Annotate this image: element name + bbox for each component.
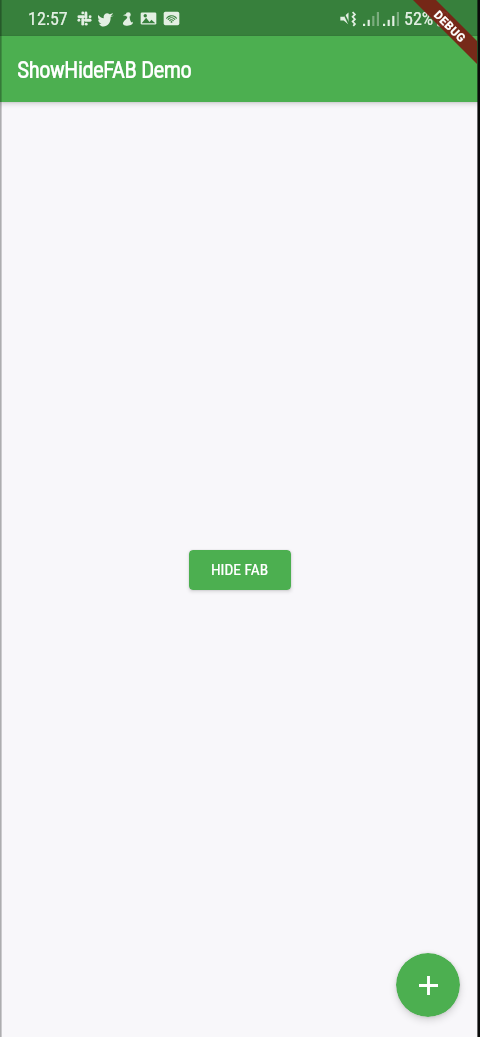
other: Silent mode	[340, 10, 357, 27]
staticText: HIDE FAB	[211, 561, 269, 579]
other: Wi-Fi	[163, 10, 180, 27]
staticText: ShowHideFAB Demo	[17, 58, 192, 84]
button[interactable]: Add	[396, 953, 460, 1017]
staticText: 52%	[404, 8, 434, 29]
other: Battery	[437, 11, 448, 26]
other: Notification	[119, 11, 135, 27]
other: Signal SIM 2	[383, 12, 399, 26]
other: Screenshot	[140, 10, 157, 27]
other: Slack	[77, 11, 92, 26]
staticText: 12:57	[28, 8, 68, 29]
other: Twitter	[98, 11, 114, 27]
button[interactable]: HIDE FAB	[189, 550, 291, 590]
other: Signal SIM 1	[363, 12, 379, 26]
